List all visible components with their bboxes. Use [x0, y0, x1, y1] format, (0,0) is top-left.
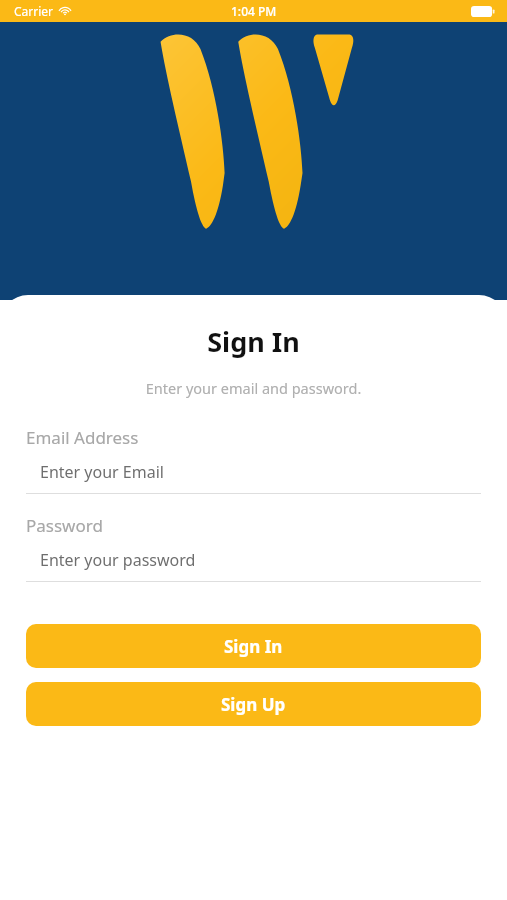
- staticText: Email Address: [26, 426, 139, 449]
- button[interactable]: Sign Up: [26, 682, 481, 726]
- button[interactable]: Password: [0, 514, 507, 582]
- staticText: Enter your Email: [40, 461, 164, 483]
- staticText: Password: [26, 514, 103, 537]
- button[interactable]: Sign In: [26, 624, 481, 668]
- staticText: Sign Up: [221, 693, 286, 716]
- button[interactable]: Email Address: [0, 426, 507, 494]
- staticText: 1:04 PM: [231, 3, 277, 19]
- staticText: Carrier: [14, 3, 54, 19]
- staticText: Sign In: [224, 635, 283, 658]
- staticText: Enter your email and password.: [0, 378, 507, 398]
- staticText: Enter your password: [40, 549, 196, 571]
- staticText: Sign In: [0, 323, 507, 360]
